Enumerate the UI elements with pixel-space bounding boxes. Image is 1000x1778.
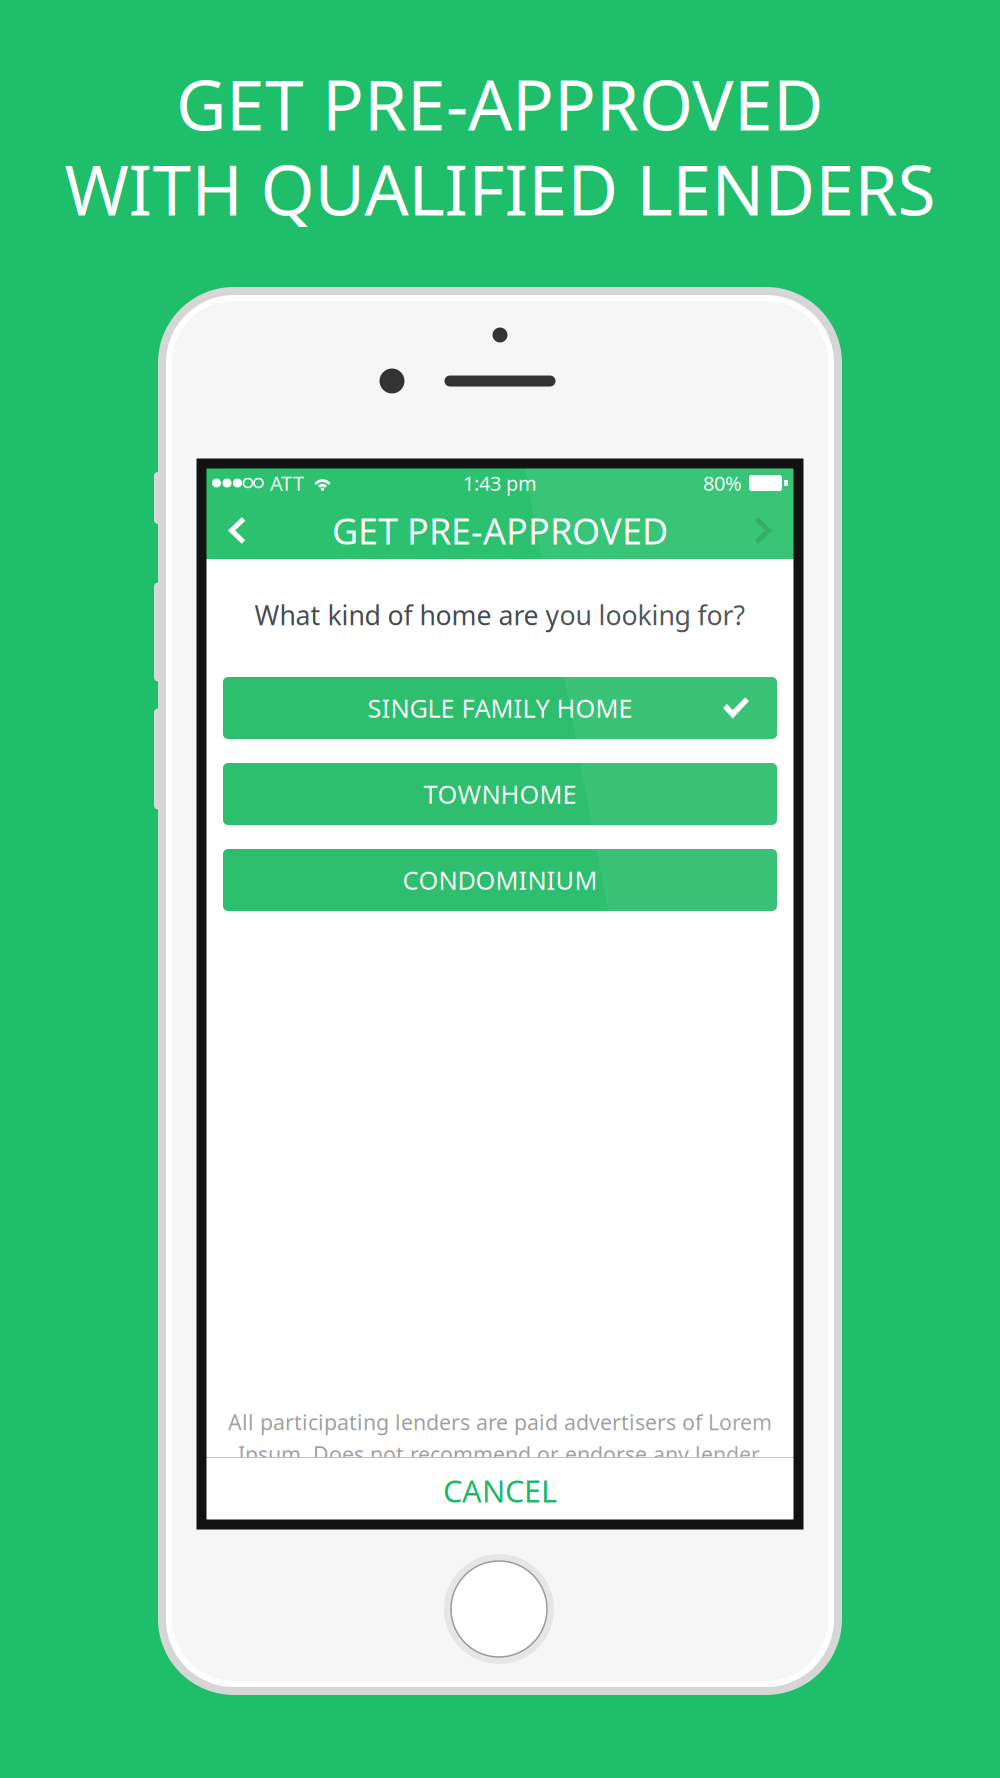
staticText: 1:43 pm [463,470,537,496]
staticText: CANCEL [443,1470,557,1511]
staticText: 80% [703,470,742,496]
staticText: TOWNHOME [423,777,576,811]
button[interactable]: SINGLE FAMILY HOME [223,677,777,739]
staticText: All participating lenders are paid adver… [228,1408,772,1436]
button[interactable]: CANCEL [202,1457,798,1524]
staticText: Ipsum. Does not recommend or endorse any… [238,1440,762,1468]
staticText: GET PRE-APPROVED [176,57,824,150]
button[interactable]: Back [211,502,264,559]
button[interactable]: CONDOMINIUM [223,849,777,911]
button[interactable]: Next [736,502,789,559]
staticText: WITH QUALIFIED LENDERS [64,142,935,235]
staticText: SINGLE FAMILY HOME [367,691,632,725]
staticText: ATT [270,470,304,496]
staticText: What kind of home are you looking for? [254,597,745,633]
staticText: GET PRE-APPROVED [332,507,668,554]
button[interactable]: TOWNHOME [223,763,777,825]
staticText: CONDOMINIUM [402,863,597,897]
